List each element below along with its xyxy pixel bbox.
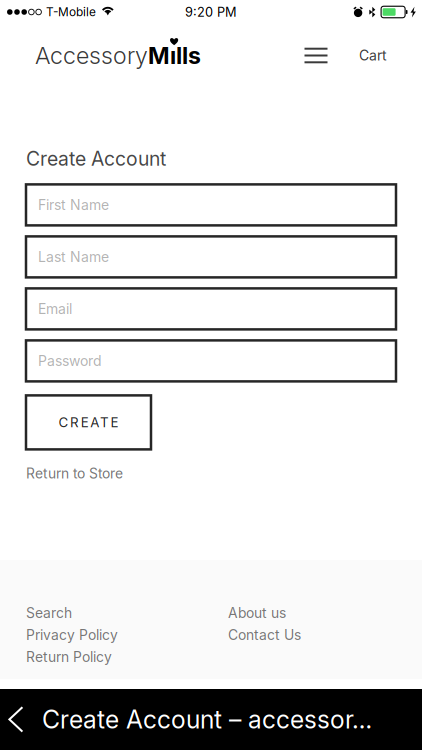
button[interactable]: Email (26, 288, 396, 329)
staticText: Accessory (35, 41, 148, 70)
staticText: Create Account – accessor… (42, 704, 372, 734)
staticText: Email (38, 300, 72, 317)
staticText: 9:20 PM (185, 4, 237, 20)
staticText: Contact Us (228, 627, 301, 643)
button[interactable]: First Name (26, 184, 396, 225)
staticText: Return to Store (26, 465, 123, 482)
button[interactable]: Cart (351, 32, 395, 78)
button[interactable]: Password (26, 340, 396, 381)
button[interactable]: Search (26, 602, 228, 624)
staticText: T-Mobile (46, 5, 96, 19)
button[interactable]: Return to Store (26, 461, 186, 485)
button[interactable]: Privacy Policy (26, 624, 228, 646)
staticText: Last Name (38, 248, 109, 265)
staticText: About us (228, 605, 286, 621)
staticText: Create Account (26, 147, 166, 170)
button[interactable]: Last Name (26, 236, 396, 277)
staticText: Cart (359, 47, 387, 64)
button[interactable]: Menu (294, 32, 338, 78)
staticText: Privacy Policy (26, 627, 118, 643)
staticText: CREATE (58, 414, 118, 430)
staticText: Return Policy (26, 649, 112, 665)
staticText: First Name (38, 196, 109, 213)
button[interactable]: Contact Us (228, 624, 368, 646)
button[interactable]: About us (228, 602, 368, 624)
button[interactable]: Back (2, 696, 30, 742)
button[interactable]: Return Policy (26, 646, 228, 668)
staticText: Password (38, 352, 102, 369)
staticText: Mılls (148, 41, 201, 70)
button[interactable]: CREATE (26, 395, 151, 449)
staticText: Search (26, 605, 72, 621)
